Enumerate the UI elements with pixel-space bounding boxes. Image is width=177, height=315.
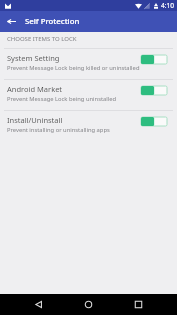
staticText: Install/Uninstall: [7, 115, 63, 125]
staticText: Prevent Message Lock being uninstalled: [7, 95, 117, 103]
button[interactable]: System Setting: [0, 49, 177, 79]
button[interactable]: Install/Uninstall: [0, 111, 177, 141]
button[interactable]: Toggle: [141, 55, 167, 64]
button[interactable]: Home: [78, 294, 99, 315]
button[interactable]: Back: [0, 11, 22, 32]
staticText: Prevent Message Lock being killed or uni…: [7, 64, 140, 72]
button[interactable]: Toggle: [141, 86, 167, 95]
staticText: System Setting: [7, 53, 60, 63]
staticText: Prevent installing or uninstalling apps: [7, 126, 110, 134]
staticText: Android Market: [7, 84, 63, 94]
staticText: Self Protection: [25, 16, 80, 27]
staticText: CHOOSE ITEMS TO LOCK: [7, 35, 77, 43]
button[interactable]: Back: [28, 294, 49, 315]
button[interactable]: Android Market: [0, 80, 177, 110]
button[interactable]: Toggle: [141, 117, 167, 126]
staticText: 4:10: [161, 1, 175, 10]
button[interactable]: Recent apps: [128, 294, 149, 315]
